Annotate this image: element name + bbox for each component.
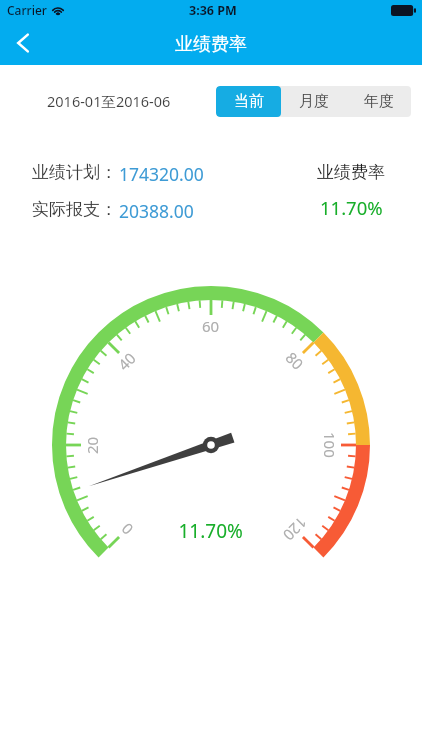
staticText: 年度	[364, 92, 394, 111]
staticText: Carrier	[7, 2, 47, 18]
staticText: 业绩费率	[317, 162, 385, 183]
staticText: 月度	[299, 92, 329, 111]
staticText: 业绩计划：	[32, 162, 117, 183]
staticText: 当前	[234, 92, 264, 111]
button[interactable]: Back	[0, 20, 45, 65]
staticText: 实际报支：	[32, 199, 117, 220]
staticText: 3:36 PM	[189, 2, 237, 19]
button[interactable]: 当前	[216, 86, 281, 117]
staticText: 业绩费率	[175, 33, 247, 56]
staticText: 174320.00	[119, 162, 204, 186]
button[interactable]: 月度	[281, 86, 346, 117]
button[interactable]: 年度	[346, 86, 411, 117]
staticText: 11.70%	[320, 195, 383, 219]
staticText: 2016-01至2016-06	[47, 91, 171, 111]
staticText: 20388.00	[119, 199, 194, 223]
